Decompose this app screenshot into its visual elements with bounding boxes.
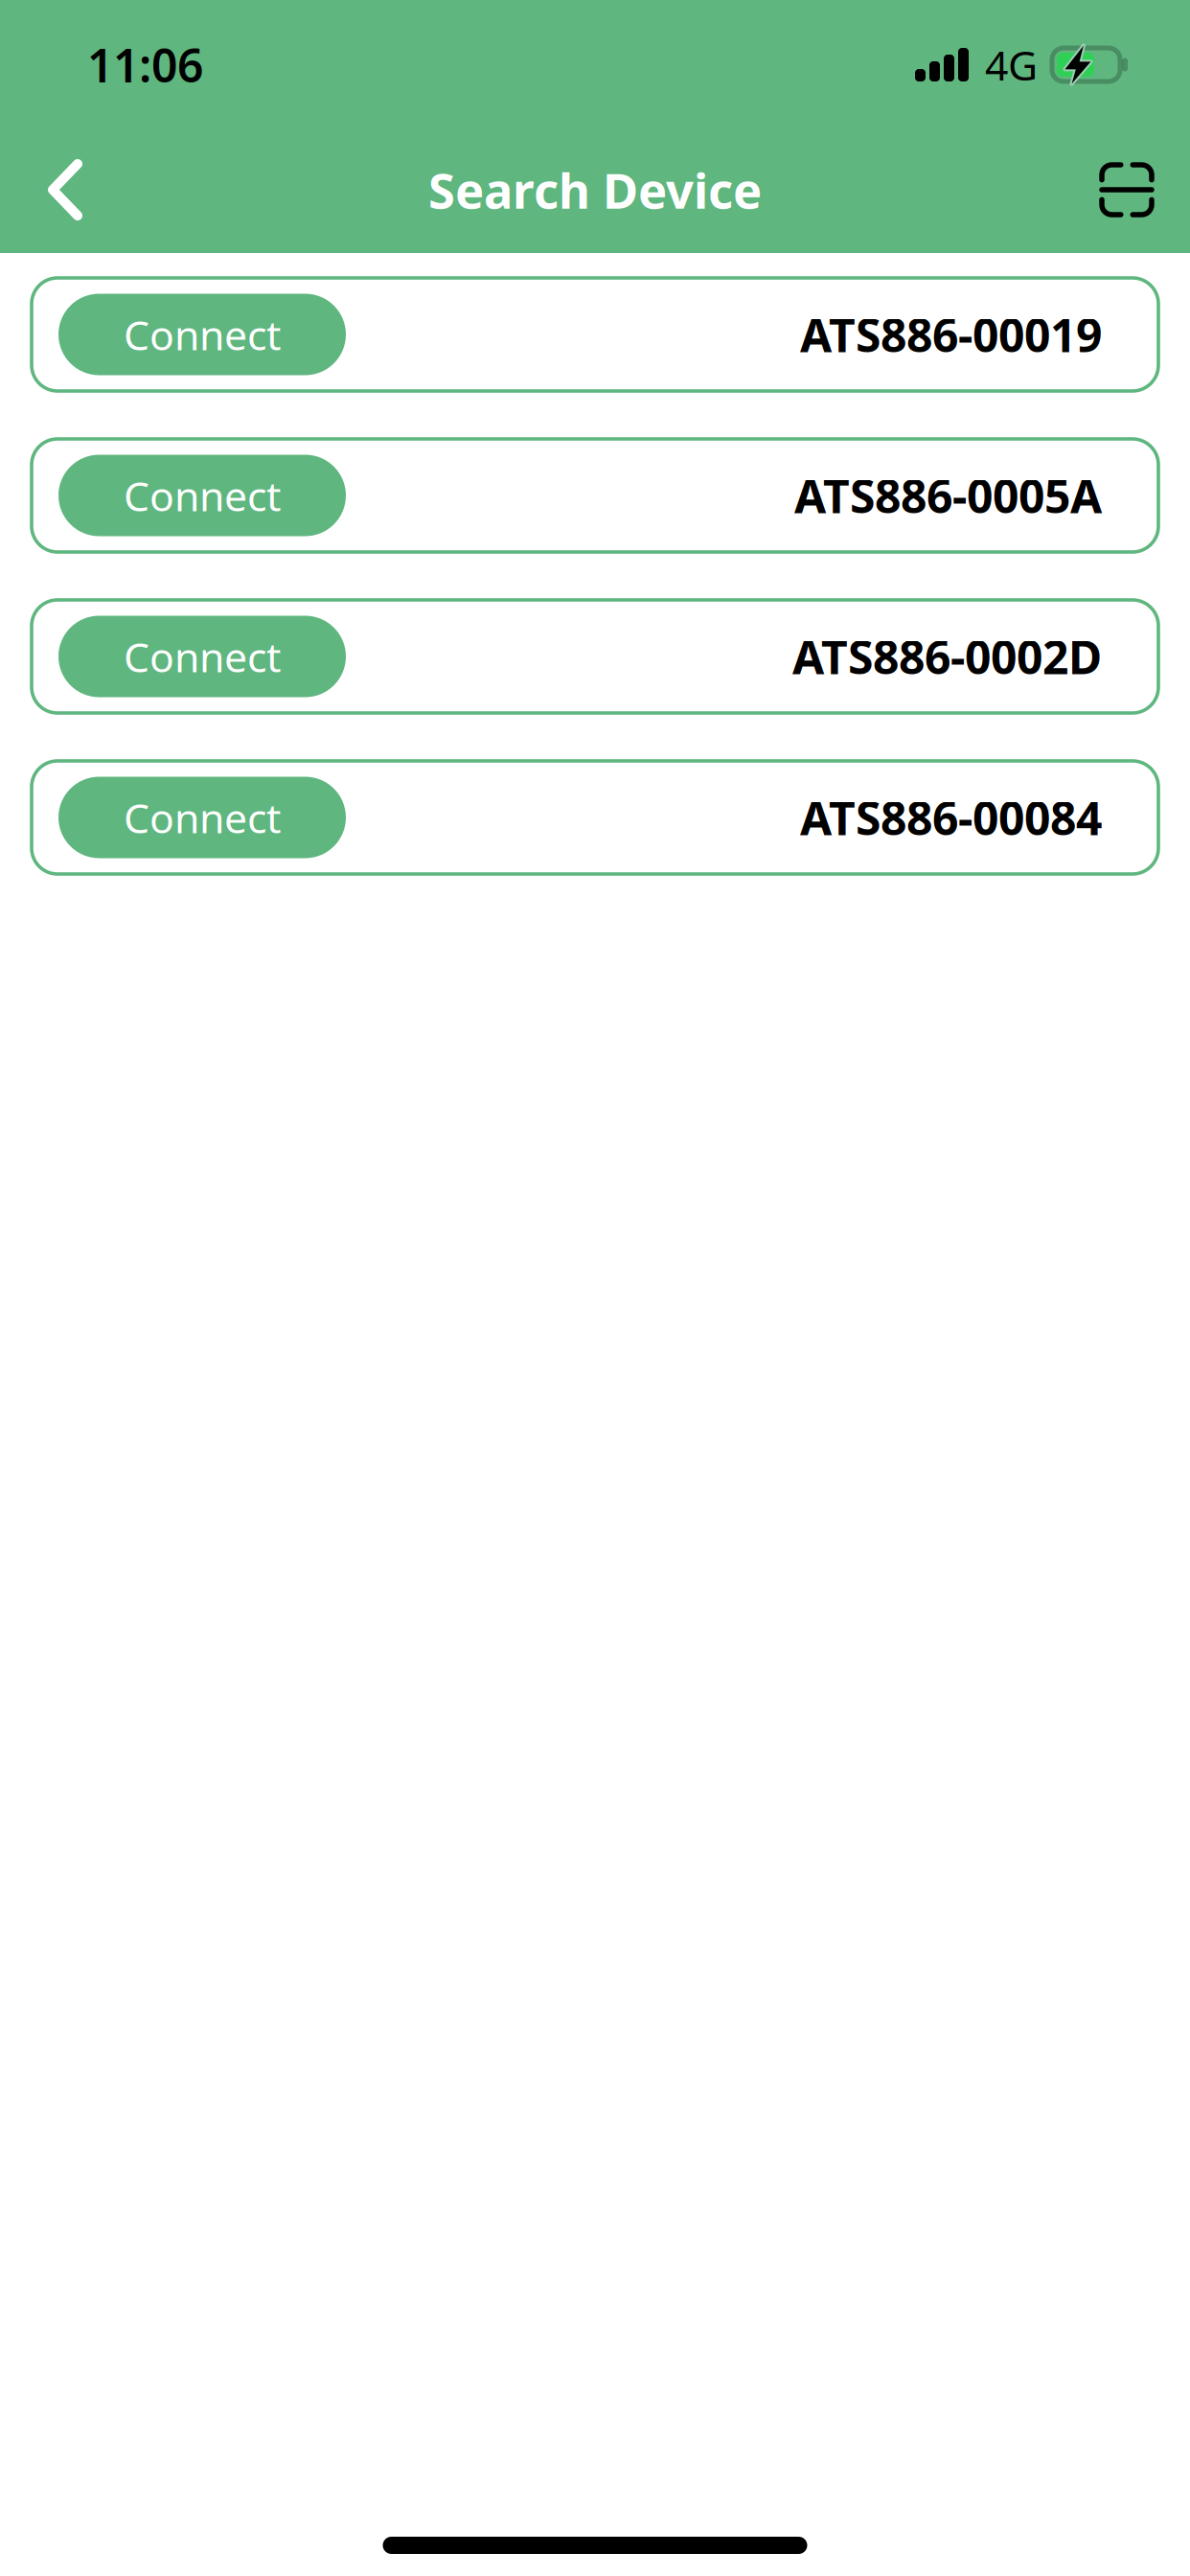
button[interactable]: Connect	[32, 278, 1158, 391]
staticText: Search Device	[428, 158, 762, 222]
staticText: ATS886-00019	[800, 304, 1102, 365]
button[interactable]: Connect	[32, 439, 1158, 552]
staticText: 11:06	[87, 34, 203, 95]
button[interactable]: Back	[0, 139, 120, 241]
staticText: Connect	[124, 629, 281, 684]
staticText: Connect	[124, 790, 281, 845]
button[interactable]: Connect	[32, 761, 1158, 874]
staticText: Connect	[124, 307, 281, 362]
staticText: ATS886-0005A	[794, 465, 1102, 526]
staticText: ATS886-0002D	[792, 626, 1102, 687]
staticText: ATS886-00084	[800, 787, 1102, 848]
button[interactable]: Scan QR code	[1064, 140, 1190, 240]
staticText: Connect	[124, 468, 281, 523]
staticText: 4G	[985, 38, 1038, 92]
button[interactable]: Connect	[32, 600, 1158, 713]
